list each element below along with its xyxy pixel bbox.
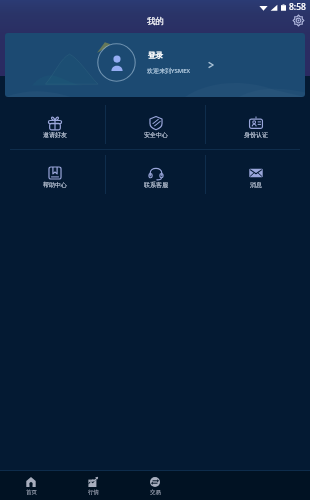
button[interactable]: Settings — [290, 12, 306, 28]
button[interactable]: 消息 — [206, 150, 305, 199]
staticText: 联系客服 — [144, 181, 168, 189]
staticText: 邀请好友 — [43, 131, 67, 139]
button[interactable]: 身份认证 — [206, 100, 305, 149]
staticText: 欢迎来到YSMEX — [147, 67, 190, 75]
staticText: 帮助中心 — [43, 181, 67, 189]
button[interactable]: 帮助中心 — [5, 150, 105, 199]
button[interactable]: 登录 — [5, 33, 305, 97]
staticText: 8:58 — [289, 1, 306, 13]
staticText: 行情 — [88, 489, 99, 496]
button[interactable]: 联系客服 — [106, 150, 205, 199]
staticText: 安全中心 — [144, 131, 168, 139]
button[interactable]: 首页 — [0, 471, 62, 500]
staticText: 身份认证 — [244, 131, 268, 139]
button[interactable]: 行情 — [62, 471, 124, 500]
button[interactable]: 邀请好友 — [5, 100, 105, 149]
staticText: 我的 — [147, 16, 164, 27]
staticText: 登录 — [148, 51, 163, 60]
staticText: 消息 — [250, 181, 262, 189]
staticText: 交易 — [150, 489, 161, 496]
button[interactable]: 交易 — [124, 471, 186, 500]
button[interactable]: 安全中心 — [106, 100, 205, 149]
staticText: 首页 — [26, 489, 37, 496]
